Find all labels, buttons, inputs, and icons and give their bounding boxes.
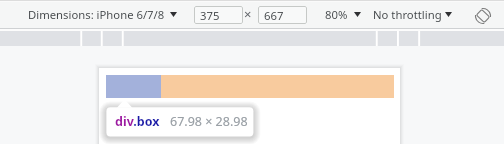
button[interactable]: Rotate device orientation [471,0,495,28]
button[interactable]: 80% [321,0,365,28]
staticText: 80% [325,7,348,22]
button[interactable]: No throttling [369,0,456,28]
staticText: 667 [264,8,284,23]
staticText: div.box [115,113,160,130]
button[interactable]: div.box [106,107,253,136]
button[interactable]: 375 [194,6,243,24]
button[interactable]: 667 [258,6,307,24]
staticText: Dimensions: iPhone 6/7/8 [28,7,165,22]
staticText: 375 [200,8,220,23]
staticText: No throttling [373,7,442,22]
staticText: × [244,5,252,23]
button[interactable]: Dimensions: iPhone 6/7/8 [24,0,181,28]
staticText: 67.98 × 28.98 [170,113,248,130]
